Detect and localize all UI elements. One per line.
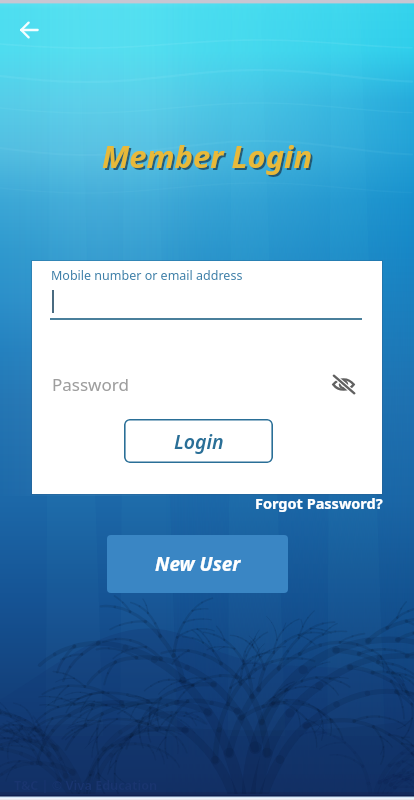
button[interactable]: T&C | © Viva Education [14, 777, 158, 794]
button[interactable]: Password [32, 361, 382, 405]
button[interactable]: Back [11, 12, 47, 48]
button[interactable]: Forgot Password? [255, 493, 383, 513]
button[interactable]: Login [124, 419, 273, 463]
staticText: Member Login [104, 137, 315, 179]
staticText: Login [174, 428, 224, 455]
button[interactable]: New User [107, 535, 288, 593]
button[interactable]: Toggle password visibility [328, 369, 358, 399]
staticText: Member Login [102, 135, 313, 177]
staticText: Forgot Password? [255, 493, 383, 513]
staticText: T&C | © Viva Education [14, 777, 158, 794]
staticText: Mobile number or email address [51, 267, 243, 284]
staticText: Password [52, 373, 129, 396]
staticText: New User [155, 551, 241, 577]
